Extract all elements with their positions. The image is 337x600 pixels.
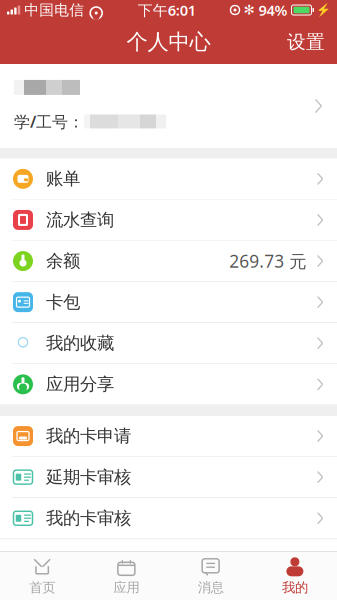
staticText: 个人中心 <box>126 29 210 55</box>
staticText: 94% <box>258 0 287 20</box>
staticText: 我的卡申请 <box>46 425 131 447</box>
staticText: 我的收藏 <box>46 333 114 354</box>
button[interactable]: 账单 <box>0 159 337 200</box>
staticText: 应用 <box>113 579 139 596</box>
staticText: 应用分享 <box>46 374 114 395</box>
staticText: ⚡ <box>316 3 331 17</box>
button[interactable]: 我的收藏 <box>0 323 337 364</box>
staticText: 学/工号： <box>14 111 84 132</box>
staticText: 余额 <box>46 250 80 272</box>
staticText: 账单 <box>46 168 80 189</box>
staticText: 中国电信 <box>24 1 84 19</box>
button[interactable]: 流水查询 <box>0 200 337 241</box>
button[interactable]: 我的卡审核 <box>0 498 337 539</box>
button[interactable]: 首页 <box>0 552 84 600</box>
button[interactable]: 卡包 <box>0 282 337 323</box>
staticText: 卡包 <box>46 291 80 313</box>
staticText: ✻ <box>243 2 254 17</box>
button[interactable]: 设置 <box>275 22 337 61</box>
staticText: 流水查询 <box>46 209 114 231</box>
button[interactable]: 我的卡申请 <box>0 416 337 457</box>
button[interactable]: 我的 <box>253 552 337 600</box>
button[interactable]: 应用分享 <box>0 364 337 405</box>
button[interactable]: 学/工号： <box>0 64 337 148</box>
button[interactable]: 应用 <box>84 552 168 600</box>
button[interactable]: 延期卡审核 <box>0 457 337 498</box>
staticText: 延期卡审核 <box>46 466 131 488</box>
staticText: 消息 <box>198 579 224 596</box>
button[interactable]: 余额 <box>0 241 337 282</box>
staticText: 269.73 元 <box>229 249 306 272</box>
staticText: 设置 <box>287 30 325 53</box>
staticText: 下午6:01 <box>138 0 196 20</box>
staticText: 我的 <box>282 579 308 596</box>
staticText: 我的卡审核 <box>46 508 131 529</box>
button[interactable]: 消息 <box>168 552 253 600</box>
staticText: 首页 <box>29 579 55 596</box>
